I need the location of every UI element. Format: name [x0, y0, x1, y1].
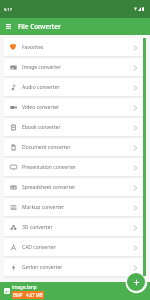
staticText: Audio converter — [22, 84, 60, 91]
button[interactable]: Gerber converter — [4, 258, 143, 276]
staticText: 5:17 — [4, 7, 12, 12]
staticText: Markup converter — [22, 204, 65, 211]
button[interactable]: Favorites — [4, 38, 143, 56]
button[interactable]: CAD converter — [4, 238, 143, 256]
button[interactable]: Markup converter — [4, 198, 143, 216]
button[interactable]: Ebook converter — [4, 118, 143, 136]
button[interactable]: Video converter — [4, 98, 143, 116]
staticText: File Converter — [18, 22, 61, 31]
staticText: image.bmp — [12, 284, 37, 290]
staticText: Document converter — [22, 144, 71, 151]
button[interactable]: Presentation converter — [4, 158, 143, 176]
staticText: Gerber converter — [22, 264, 63, 271]
staticText: CAD converter — [22, 244, 56, 251]
staticText: Video converter — [22, 104, 60, 111]
staticText: BMP 4.07 MB — [13, 292, 43, 298]
staticText: 3D converter — [22, 224, 53, 231]
staticText: Favorites — [22, 44, 44, 51]
staticText: Ebook converter — [22, 124, 61, 131]
staticText: Spreadsheet converter — [22, 184, 76, 191]
button[interactable]: Open navigation menu — [0, 18, 17, 35]
button[interactable]: 3D converter — [4, 218, 143, 236]
button[interactable]: Add file — [127, 273, 145, 291]
staticText: Image converter — [22, 64, 62, 71]
button[interactable]: Image converter — [4, 58, 143, 76]
button[interactable]: Audio converter — [4, 78, 143, 96]
button[interactable]: Document converter — [4, 138, 143, 156]
staticText: Presentation converter — [22, 164, 76, 171]
button[interactable]: Spreadsheet converter — [4, 178, 143, 196]
